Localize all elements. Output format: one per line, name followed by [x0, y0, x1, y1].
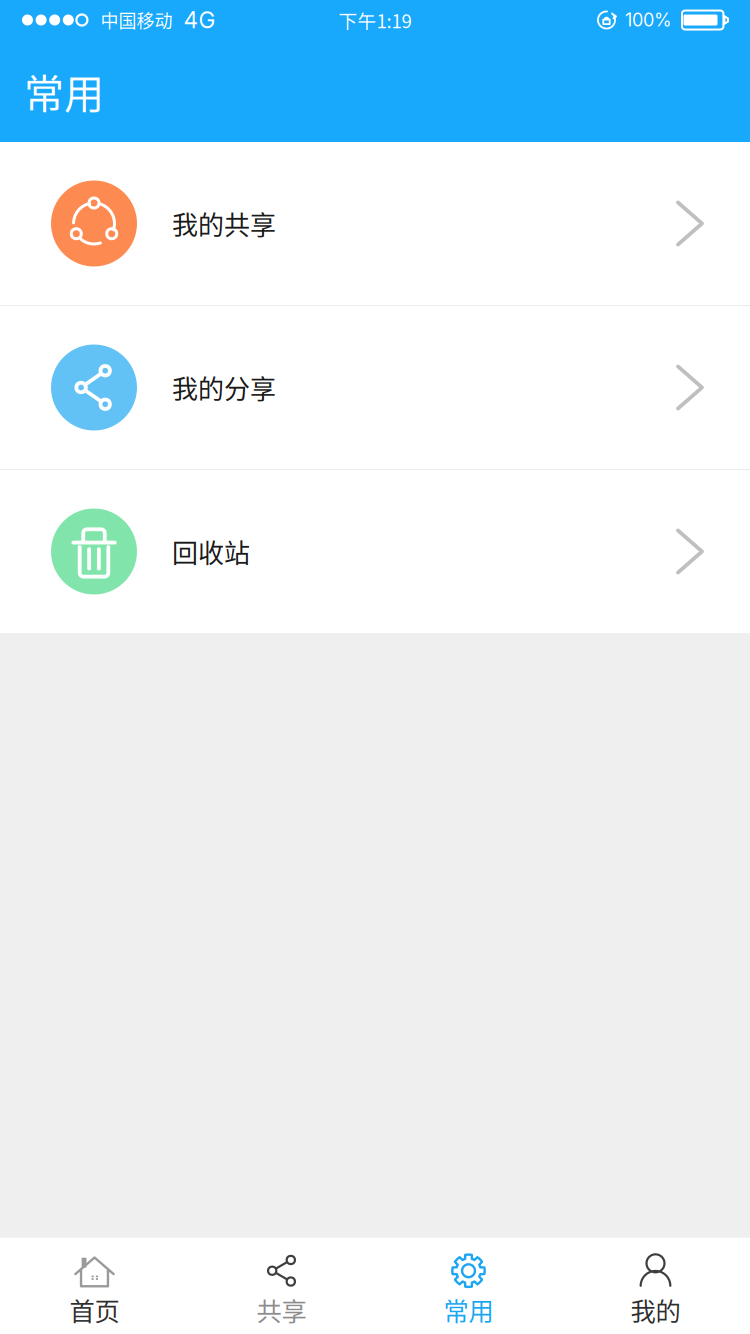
- button[interactable]: 常用: [375, 1237, 562, 1334]
- button[interactable]: 我的分享: [0, 306, 750, 469]
- staticText: 常用: [443, 1291, 493, 1328]
- staticText: 100%: [625, 9, 672, 31]
- button[interactable]: 回收站: [0, 470, 750, 633]
- staticText: 我的: [630, 1291, 680, 1328]
- button[interactable]: 我的共享: [0, 142, 750, 305]
- staticText: 共享: [256, 1291, 306, 1328]
- button[interactable]: 首页: [1, 1237, 188, 1334]
- staticText: 下午1:19: [338, 6, 411, 33]
- button[interactable]: 共享: [188, 1237, 375, 1334]
- staticText: 我的共享: [172, 205, 276, 242]
- staticText: 首页: [69, 1291, 119, 1328]
- staticText: 中国移动: [100, 7, 172, 33]
- staticText: 4G: [183, 6, 215, 34]
- staticText: 常用: [24, 62, 104, 120]
- staticText: 我的分享: [172, 369, 276, 406]
- button[interactable]: 我的: [562, 1237, 749, 1334]
- staticText: 回收站: [172, 533, 250, 570]
